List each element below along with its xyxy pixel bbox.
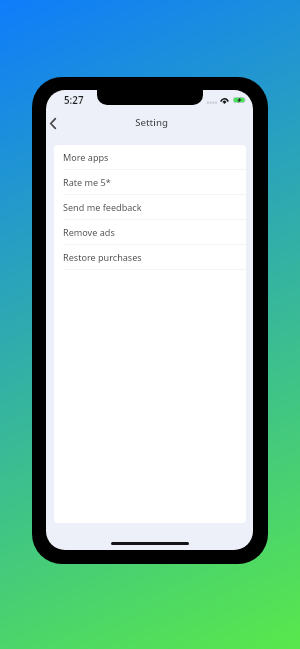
staticText: Setting: [135, 116, 168, 129]
staticText: More apps: [63, 151, 109, 163]
staticText: 5:27: [64, 94, 84, 107]
staticText: Remove ads: [63, 226, 115, 238]
button[interactable]: Rate me 5*: [54, 170, 246, 195]
staticText: Restore purchases: [63, 251, 142, 263]
staticText: Send me feedback: [63, 201, 142, 213]
button[interactable]: Back: [46, 113, 63, 133]
staticText: Rate me 5*: [63, 176, 111, 188]
button[interactable]: Restore purchases: [54, 245, 246, 270]
button[interactable]: Remove ads: [54, 220, 246, 245]
button[interactable]: More apps: [54, 145, 246, 170]
button[interactable]: Send me feedback: [54, 195, 246, 220]
